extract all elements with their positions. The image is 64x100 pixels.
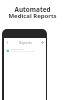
staticText: Automated — [14, 5, 51, 14]
staticText: Reports — [19, 40, 32, 45]
button[interactable]: Add report — [40, 40, 45, 45]
button[interactable]: Back — [5, 40, 10, 45]
staticText: Medical Reports — [8, 12, 57, 20]
button[interactable] — [4, 46, 46, 55]
